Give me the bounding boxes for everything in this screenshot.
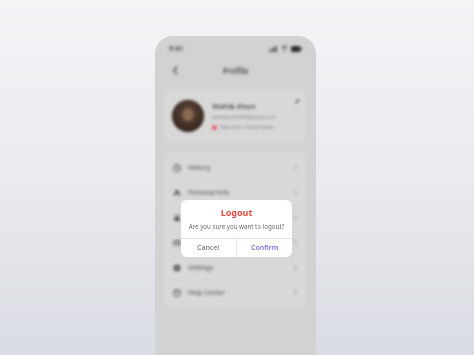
button[interactable]: Help Center bbox=[164, 280, 307, 305]
staticText: Profile bbox=[223, 65, 249, 76]
staticText: wahibkhan5595@gmail.com bbox=[212, 114, 276, 121]
staticText: Cancel bbox=[197, 243, 220, 253]
staticText: Payment Method bbox=[188, 238, 242, 247]
staticText: Confirm bbox=[251, 243, 279, 253]
staticText: Wahib Khan bbox=[212, 101, 256, 111]
staticText: New York, United States bbox=[220, 124, 274, 131]
button[interactable]: Back bbox=[167, 62, 183, 78]
button[interactable]: Edit profile bbox=[292, 96, 301, 105]
button[interactable]: Personal Info bbox=[164, 180, 307, 205]
staticText: Logout bbox=[181, 206, 292, 218]
button[interactable]: Confirm bbox=[237, 239, 292, 257]
staticText: 9:41 bbox=[169, 44, 183, 54]
staticText: Help Center bbox=[188, 288, 225, 297]
button[interactable]: History bbox=[164, 155, 307, 180]
staticText: Settings bbox=[188, 263, 214, 272]
staticText: History bbox=[188, 163, 211, 172]
staticText: Are you sure you want to logout? bbox=[181, 222, 292, 230]
button[interactable]: Wahib Khan bbox=[164, 90, 307, 142]
button[interactable]: Privacy bbox=[164, 205, 307, 230]
button[interactable]: Payment Method bbox=[164, 230, 307, 255]
staticText: Personal Info bbox=[188, 188, 230, 197]
button[interactable]: Cancel bbox=[181, 239, 236, 257]
button[interactable]: Settings bbox=[164, 255, 307, 280]
